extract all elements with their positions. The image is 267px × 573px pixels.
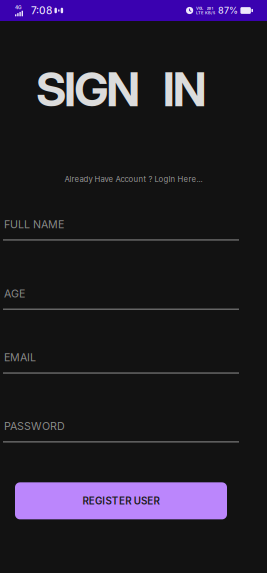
staticText: Already Have Account ? LogIn Here... — [64, 174, 202, 184]
staticText: AGE — [4, 287, 25, 300]
staticText: 87% — [218, 5, 238, 16]
button[interactable]: REGISTER USER — [15, 482, 227, 519]
staticText: 281 — [207, 6, 214, 11]
staticText: SIGN IN — [36, 61, 231, 117]
staticText: 7:08 — [31, 4, 52, 17]
staticText: VoL — [196, 6, 203, 11]
staticText: 4G — [15, 5, 22, 10]
staticText: REGISTER USER — [82, 495, 159, 507]
staticText: KB/s — [205, 10, 215, 15]
staticText: EMAIL — [4, 351, 36, 364]
staticText: FULL NAME — [4, 218, 64, 231]
staticText: PASSWORD — [4, 420, 65, 433]
staticText: LTE — [196, 10, 203, 15]
